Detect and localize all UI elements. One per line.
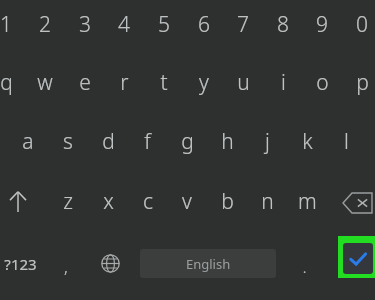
button[interactable]: ?123 — [0, 241, 43, 287]
staticText: e — [79, 68, 91, 97]
button[interactable]: 3 — [65, 0, 105, 49]
staticText: i — [281, 68, 286, 97]
button[interactable]: . — [284, 243, 324, 289]
staticText: t — [160, 68, 168, 97]
button[interactable]: b — [207, 176, 247, 226]
staticText: d — [102, 127, 115, 156]
button[interactable]: u — [223, 57, 263, 107]
staticText: c — [143, 187, 153, 216]
staticText: m — [298, 187, 317, 216]
button[interactable]: 7 — [223, 0, 263, 49]
staticText: g — [181, 127, 194, 156]
staticText: English — [186, 255, 231, 273]
button[interactable]: 6 — [184, 0, 224, 49]
staticText: 6 — [198, 10, 210, 39]
staticText: x — [103, 187, 114, 216]
button[interactable]: i — [263, 57, 303, 107]
button[interactable]: c — [128, 176, 168, 226]
staticText: o — [316, 68, 329, 97]
staticText: s — [63, 127, 73, 156]
button[interactable]: 0 — [342, 0, 375, 49]
button[interactable]: j — [247, 116, 287, 166]
button[interactable]: r — [104, 57, 144, 107]
button[interactable]: z — [48, 176, 88, 226]
staticText: 5 — [158, 10, 170, 39]
button[interactable]: 8 — [263, 0, 303, 49]
button[interactable]: d — [88, 116, 128, 166]
button[interactable]: k — [287, 116, 327, 166]
button[interactable]: l — [326, 116, 366, 166]
staticText: u — [237, 68, 250, 97]
staticText: 0 — [356, 10, 368, 39]
staticText: n — [261, 187, 274, 216]
button[interactable]: o — [302, 57, 342, 107]
staticText: 9 — [316, 10, 328, 39]
button[interactable]: 2 — [25, 0, 65, 49]
staticText: y — [199, 68, 209, 97]
staticText: 2 — [39, 10, 51, 39]
button[interactable]: v — [167, 176, 207, 226]
staticText: b — [221, 187, 234, 216]
staticText: h — [221, 127, 234, 156]
button[interactable]: y — [184, 57, 224, 107]
staticText: v — [182, 187, 192, 216]
staticText: k — [302, 127, 313, 156]
staticText: 1 — [0, 10, 12, 39]
staticText: 4 — [118, 10, 130, 39]
button[interactable]: , — [46, 243, 86, 289]
staticText: , — [64, 255, 68, 278]
staticText: ?123 — [4, 254, 37, 274]
button[interactable]: Enter — [338, 236, 375, 278]
button[interactable]: h — [207, 116, 247, 166]
button[interactable]: 5 — [144, 0, 184, 49]
staticText: r — [120, 68, 129, 97]
button[interactable]: Change language — [89, 240, 131, 286]
button[interactable]: f — [127, 116, 167, 166]
button[interactable]: 1 — [0, 0, 26, 49]
staticText: f — [144, 127, 151, 156]
staticText: z — [63, 187, 73, 216]
button[interactable]: q — [0, 57, 26, 107]
button[interactable]: a — [8, 116, 48, 166]
button[interactable]: x — [88, 176, 128, 226]
button[interactable]: p — [342, 57, 375, 107]
other: Enter — [343, 243, 373, 274]
staticText: 8 — [277, 10, 289, 39]
button[interactable]: English — [140, 249, 276, 278]
button[interactable]: g — [167, 116, 207, 166]
button[interactable]: s — [48, 116, 88, 166]
button[interactable]: 9 — [302, 0, 342, 49]
staticText: p — [356, 68, 369, 97]
staticText: a — [22, 127, 34, 156]
button[interactable]: e — [65, 57, 105, 107]
button[interactable]: t — [144, 57, 184, 107]
staticText: q — [0, 68, 13, 97]
button[interactable]: 4 — [104, 0, 144, 49]
staticText: 7 — [237, 10, 249, 39]
button[interactable]: Backspace — [334, 178, 375, 228]
button[interactable]: m — [287, 176, 327, 226]
button[interactable]: n — [247, 176, 287, 226]
staticText: w — [37, 68, 53, 97]
staticText: 3 — [79, 10, 91, 39]
staticText: l — [344, 127, 349, 156]
button[interactable]: w — [25, 57, 65, 107]
button[interactable]: Shift — [0, 176, 40, 226]
staticText: . — [302, 255, 307, 278]
staticText: j — [265, 127, 270, 156]
